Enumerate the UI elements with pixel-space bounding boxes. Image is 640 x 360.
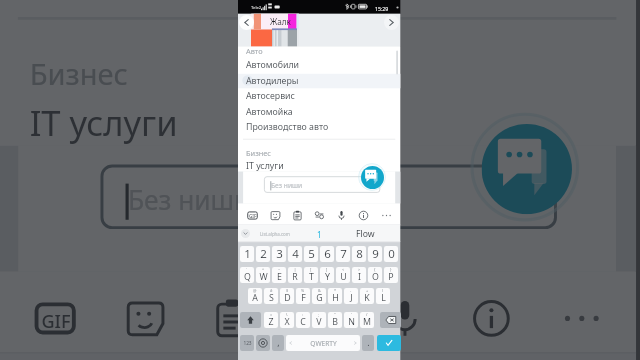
button[interactable]: U — [336, 267, 350, 283]
button[interactable]: Stickers — [120, 293, 171, 344]
button[interactable]: A — [248, 288, 262, 304]
button[interactable]: V — [312, 312, 326, 328]
button[interactable]: Y — [320, 267, 334, 283]
button[interactable]: Flow — [353, 227, 378, 240]
button[interactable]: IT услуги — [0, 92, 635, 151]
button[interactable]: IT услуги — [238, 158, 400, 173]
button[interactable]: 6 — [320, 246, 334, 262]
staticText: Z — [268, 316, 274, 328]
staticText: " — [334, 312, 336, 317]
button[interactable]: More options — [380, 209, 393, 222]
button[interactable]: S — [264, 288, 278, 304]
button[interactable]: More options — [556, 293, 607, 344]
button[interactable]: Автомобили — [238, 57, 400, 72]
button[interactable]: 2 — [256, 246, 270, 262]
staticText: @ — [253, 288, 257, 293]
button[interactable]: Info — [357, 209, 370, 222]
staticText: ; — [318, 312, 320, 317]
button[interactable]: F — [296, 288, 310, 304]
button[interactable]: Автосервис — [238, 88, 400, 103]
button[interactable]: 123 — [240, 335, 254, 351]
button[interactable]: Производство авто — [238, 119, 400, 134]
button[interactable]: 7 — [336, 246, 350, 262]
button[interactable]: G — [312, 288, 326, 304]
button[interactable]: O — [368, 267, 382, 283]
staticText: Без ниши — [128, 183, 254, 218]
button[interactable]: R — [288, 267, 302, 283]
button[interactable]: Enter — [377, 335, 401, 351]
button[interactable]: Voice input — [379, 293, 430, 344]
button[interactable]: Автомойка — [238, 104, 400, 119]
button[interactable]: Open chat — [361, 166, 384, 189]
staticText: 5 — [308, 246, 315, 262]
button[interactable]: 4 — [288, 246, 302, 262]
button[interactable]: 1 — [240, 246, 254, 262]
button[interactable]: Translate — [313, 209, 326, 222]
button[interactable]: Previous — [239, 15, 254, 30]
button[interactable]: Translate — [293, 293, 344, 344]
staticText: 6 — [324, 246, 331, 262]
button[interactable]: 5 — [304, 246, 318, 262]
button[interactable]: Voice input — [335, 209, 348, 222]
staticText: 1 — [317, 229, 322, 240]
button[interactable]: 9 — [368, 246, 382, 262]
button[interactable]: Backspace — [380, 312, 401, 328]
button[interactable]: 3 — [272, 246, 286, 262]
button[interactable]: P — [384, 267, 398, 283]
button[interactable]: Автодилеры — [238, 73, 400, 88]
button[interactable]: 0 — [384, 246, 398, 262]
button[interactable]: C — [296, 312, 310, 328]
staticText: > — [358, 267, 361, 272]
button[interactable]: Clipboard — [206, 293, 258, 344]
button[interactable]: T — [304, 267, 318, 283]
staticText: J — [350, 292, 353, 304]
button[interactable]: 8 — [352, 246, 366, 262]
button[interactable]: J — [344, 288, 358, 304]
button[interactable]: N — [344, 312, 358, 328]
button[interactable]: X — [280, 312, 294, 328]
staticText: 3 — [276, 246, 283, 262]
button[interactable]: Info — [466, 293, 517, 344]
staticText: Жалк — [270, 16, 291, 27]
button[interactable]: GIF — [246, 209, 259, 222]
button[interactable]: Expand toolbar — [241, 229, 250, 238]
staticText: % — [301, 288, 305, 293]
staticText: GIF — [249, 213, 257, 219]
staticText: | — [294, 267, 297, 272]
staticText: Автомойка — [246, 106, 293, 118]
button[interactable]: Open chat — [482, 124, 572, 214]
staticText: U — [340, 271, 347, 283]
button[interactable]: Emoji — [256, 335, 270, 351]
button[interactable]: K — [360, 288, 374, 304]
staticText: & — [318, 288, 321, 293]
button[interactable]: B — [328, 312, 342, 328]
button[interactable]: 1 — [314, 228, 324, 240]
button[interactable]: H — [328, 288, 342, 304]
button[interactable]: Next — [384, 15, 399, 30]
button[interactable]: M — [360, 312, 374, 328]
button[interactable]: , — [272, 335, 284, 351]
button[interactable]: L — [376, 288, 390, 304]
button[interactable]: QWERTY — [286, 335, 360, 351]
button[interactable]: Z — [264, 312, 278, 328]
staticText: / — [366, 312, 368, 317]
staticText: 2 — [260, 246, 267, 262]
button[interactable]: Q — [240, 267, 254, 283]
button[interactable]: D — [280, 288, 294, 304]
staticText: Автодилеры — [246, 75, 299, 87]
staticText: Бизнес — [246, 148, 271, 158]
button[interactable]: Shift — [240, 312, 261, 328]
button[interactable]: E — [272, 267, 286, 283]
button[interactable]: Stickers — [269, 209, 282, 222]
staticText: P — [388, 271, 394, 283]
button[interactable]: GIF — [30, 293, 81, 344]
button[interactable]: Clipboard — [291, 209, 304, 222]
button[interactable]: . — [362, 335, 374, 351]
staticText: QWERTY — [310, 339, 337, 348]
button[interactable]: W — [256, 267, 270, 283]
staticText: O — [372, 271, 379, 283]
staticText: : — [302, 312, 304, 317]
button[interactable]: I — [352, 267, 366, 283]
staticText: B — [332, 316, 338, 328]
staticText: ' — [351, 312, 352, 317]
